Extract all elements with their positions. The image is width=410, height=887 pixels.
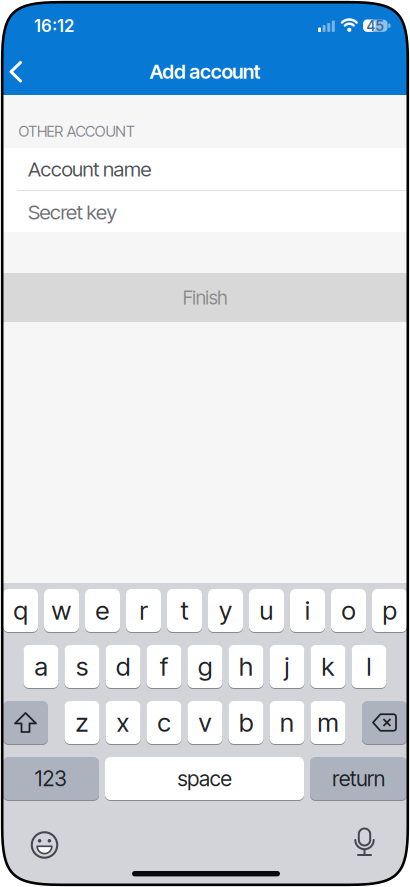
staticText: Account name: [28, 157, 151, 181]
button[interactable]: w: [44, 589, 79, 632]
staticText: w: [51, 595, 71, 626]
button[interactable]: u: [249, 589, 284, 632]
button[interactable]: a: [23, 645, 58, 688]
staticText: space: [178, 766, 231, 791]
button[interactable]: p: [372, 589, 407, 632]
staticText: t: [180, 595, 188, 626]
button[interactable]: [28, 829, 60, 861]
staticText: b: [239, 707, 253, 738]
button[interactable]: f: [146, 645, 181, 688]
button[interactable]: e: [85, 589, 120, 632]
button[interactable]: b: [228, 701, 263, 744]
button[interactable]: return: [310, 757, 407, 800]
staticText: 45: [366, 17, 384, 34]
button[interactable]: z: [64, 701, 99, 744]
button[interactable]: 123: [3, 757, 99, 800]
staticText: f: [160, 651, 168, 682]
staticText: l: [366, 651, 371, 682]
staticText: n: [280, 707, 294, 738]
button[interactable]: x: [105, 701, 140, 744]
button[interactable]: j: [269, 645, 304, 688]
button[interactable]: m: [310, 701, 345, 744]
button[interactable]: space: [105, 757, 304, 800]
button[interactable]: Secret key: [28, 191, 410, 233]
button[interactable]: n: [269, 701, 304, 744]
staticText: 123: [35, 766, 67, 791]
staticText: y: [219, 595, 232, 626]
staticText: k: [321, 651, 334, 682]
staticText: s: [76, 651, 88, 682]
button[interactable]: l: [351, 645, 386, 688]
staticText: c: [157, 707, 170, 738]
staticText: a: [34, 651, 47, 682]
button[interactable]: h: [228, 645, 263, 688]
staticText: p: [382, 595, 396, 626]
button[interactable]: [3, 701, 48, 744]
button[interactable]: Account name: [28, 148, 410, 190]
staticText: j: [284, 651, 289, 682]
staticText: Secret key: [28, 200, 116, 224]
button[interactable]: y: [208, 589, 243, 632]
button[interactable]: q: [3, 589, 38, 632]
staticText: v: [198, 707, 211, 738]
button[interactable]: v: [187, 701, 222, 744]
staticText: u: [259, 595, 273, 626]
staticText: d: [116, 651, 130, 682]
staticText: m: [317, 707, 338, 738]
staticText: return: [332, 766, 385, 791]
button[interactable]: [0, 50, 32, 93]
staticText: OTHER ACCOUNT: [18, 122, 135, 140]
staticText: q: [13, 595, 27, 626]
button[interactable]: [353, 828, 375, 856]
button[interactable]: [362, 701, 407, 744]
staticText: Add account: [149, 59, 260, 84]
staticText: x: [116, 707, 129, 738]
button[interactable]: c: [146, 701, 181, 744]
button[interactable]: g: [187, 645, 222, 688]
button[interactable]: i: [290, 589, 325, 632]
staticText: i: [305, 595, 310, 626]
staticText: h: [239, 651, 253, 682]
button[interactable]: t: [167, 589, 202, 632]
button[interactable]: s: [64, 645, 99, 688]
staticText: Finish: [183, 286, 227, 309]
staticText: r: [139, 595, 147, 626]
button[interactable]: o: [331, 589, 366, 632]
staticText: 16:12: [34, 16, 74, 36]
staticText: g: [198, 651, 212, 682]
staticText: e: [95, 595, 109, 626]
staticText: z: [75, 707, 88, 738]
button[interactable]: Finish: [0, 273, 410, 322]
button[interactable]: r: [126, 589, 161, 632]
button[interactable]: d: [105, 645, 140, 688]
staticText: o: [341, 595, 355, 626]
button[interactable]: k: [310, 645, 345, 688]
